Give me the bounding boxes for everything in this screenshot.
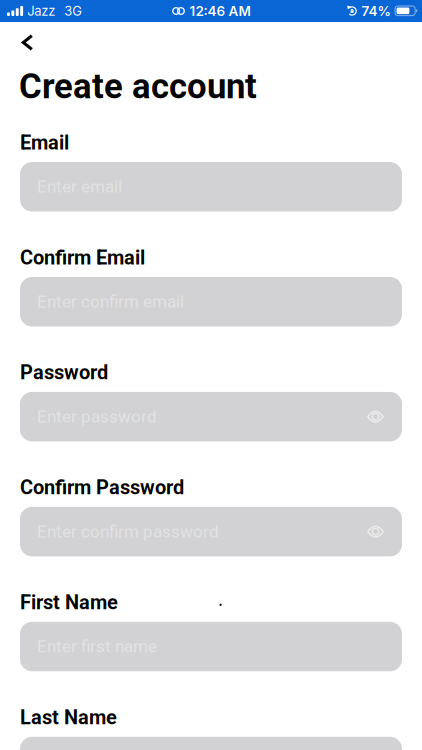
button[interactable]: Enter confirm email xyxy=(20,277,402,326)
staticText: Confirm Email xyxy=(20,246,145,269)
staticText: 74% xyxy=(362,3,392,19)
button[interactable]: Enter confirm password xyxy=(20,507,402,556)
button[interactable]: Show password xyxy=(367,524,402,540)
staticText: Enter confirm password xyxy=(37,522,219,542)
button[interactable]: Enter password xyxy=(20,392,402,441)
staticText: Confirm Password xyxy=(20,476,184,499)
button[interactable]: Back xyxy=(0,22,35,51)
staticText: 3G xyxy=(64,3,82,19)
button[interactable]: Enter last name xyxy=(20,737,402,750)
staticText: Jazz xyxy=(27,3,55,19)
staticText: Create account xyxy=(19,66,257,107)
button[interactable]: Enter first name xyxy=(20,622,402,671)
staticText: Enter password xyxy=(37,407,157,427)
staticText: First Name xyxy=(20,591,118,614)
staticText: 12:46 AM xyxy=(189,3,250,19)
button[interactable]: Show password xyxy=(367,409,402,425)
staticText: Enter first name xyxy=(37,637,157,656)
staticText: Enter confirm email xyxy=(37,292,184,312)
button[interactable]: Enter email xyxy=(20,162,402,212)
staticText: Last Name xyxy=(20,706,117,729)
staticText: Password xyxy=(20,361,108,384)
staticText: Email xyxy=(20,131,69,154)
staticText: Enter email xyxy=(37,177,122,197)
